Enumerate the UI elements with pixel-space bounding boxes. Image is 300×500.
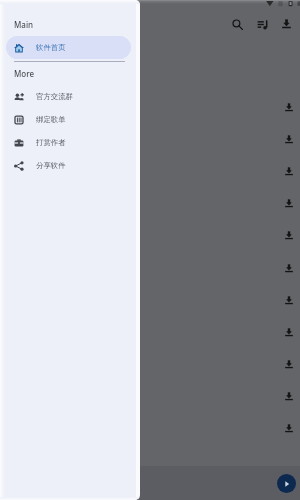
button[interactable]: Download song	[278, 417, 300, 439]
staticText: 分享软件	[36, 161, 66, 170]
button[interactable]	[0, 466, 300, 500]
button[interactable]: Download song	[278, 160, 300, 182]
button[interactable]: Download song	[278, 321, 300, 343]
button[interactable]: Playlist	[251, 13, 274, 36]
staticText: Main	[14, 19, 34, 30]
button[interactable]: Search	[226, 13, 249, 36]
staticText: 绑定歌单	[36, 115, 66, 124]
button[interactable]: 绑定歌单	[6, 108, 131, 131]
staticText: 打赏作者	[36, 138, 66, 147]
button[interactable]: Download song	[278, 192, 300, 214]
button[interactable]: Download song	[278, 257, 300, 279]
button[interactable]: Download song	[278, 289, 300, 311]
staticText: 官方交流群	[36, 92, 73, 101]
button[interactable]: Download song	[278, 353, 300, 375]
staticText: 软件首页	[36, 43, 66, 52]
button[interactable]: Download song	[278, 385, 300, 407]
button[interactable]: Download song	[278, 96, 300, 118]
staticText: More	[14, 68, 35, 79]
button[interactable]: Play	[277, 474, 296, 493]
button[interactable]: 软件首页	[6, 36, 131, 59]
button[interactable]: 官方交流群	[6, 85, 131, 108]
button[interactable]: Download all	[275, 12, 298, 35]
button[interactable]: 分享软件	[6, 154, 131, 177]
button[interactable]: 打赏作者	[6, 131, 131, 154]
button[interactable]: Download song	[278, 224, 300, 246]
button[interactable]: Download song	[278, 128, 300, 150]
